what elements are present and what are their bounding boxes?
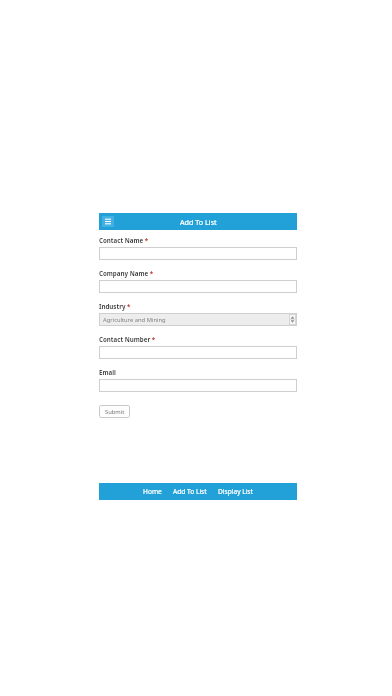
staticText: Display List bbox=[218, 487, 253, 496]
staticText: Add To List bbox=[180, 217, 217, 227]
staticText: Agriculture and Mining bbox=[103, 316, 166, 324]
staticText: Contact Name * bbox=[99, 236, 149, 244]
staticText: Contact Number * bbox=[99, 335, 156, 343]
button[interactable] bbox=[99, 247, 297, 260]
button[interactable]: Display List bbox=[215, 483, 256, 500]
staticText: Submit bbox=[105, 408, 125, 416]
staticText: Add To List bbox=[173, 487, 207, 496]
staticText: Industry * bbox=[99, 302, 131, 310]
button[interactable]: Home bbox=[140, 483, 165, 500]
button[interactable]: Add To List bbox=[170, 483, 210, 500]
staticText: Company Name * bbox=[99, 269, 154, 277]
button[interactable] bbox=[99, 280, 297, 293]
button[interactable]: Agriculture and Mining bbox=[99, 313, 297, 326]
button[interactable] bbox=[99, 379, 297, 392]
staticText: Home bbox=[143, 487, 162, 496]
button[interactable]: Submit bbox=[99, 405, 130, 418]
button[interactable]: Open navigation menu bbox=[102, 216, 114, 227]
button[interactable] bbox=[99, 346, 297, 359]
staticText: Email bbox=[99, 368, 116, 376]
